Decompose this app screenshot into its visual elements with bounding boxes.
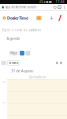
staticText: app.dealertime.com.br <box>5 5 36 9</box>
staticText: DealerTime <box>7 15 28 21</box>
staticText: Semana <box>9 61 18 65</box>
button[interactable]: View options <box>26 51 30 55</box>
button[interactable]: Next <box>59 60 63 65</box>
staticText: 01:00 <box>1 102 5 104</box>
staticText: 17:46 <box>56 0 65 4</box>
button[interactable]: Calendar <box>36 16 41 20</box>
staticText: 4G <box>39 0 43 4</box>
button[interactable]: Semana <box>8 61 19 65</box>
button[interactable]: Hoje <box>9 51 19 55</box>
staticText: 00:00 <box>1 81 5 83</box>
staticText: Hoje <box>10 51 17 55</box>
staticText: 5 <box>59 6 60 8</box>
button[interactable]: Reload <box>53 4 57 10</box>
staticText: 31 de Agosto <box>11 68 33 73</box>
button[interactable]: Account <box>49 15 53 20</box>
staticText: Digite o nome do parâmetro <box>1 28 41 32</box>
button[interactable]: Add event <box>20 51 24 55</box>
staticText: Agenda <box>6 35 19 41</box>
button[interactable]: Previous <box>55 60 59 65</box>
staticText: Quinta-feira <box>29 75 45 79</box>
button[interactable]: Tabs <box>57 4 62 10</box>
button[interactable]: More options <box>62 4 66 10</box>
